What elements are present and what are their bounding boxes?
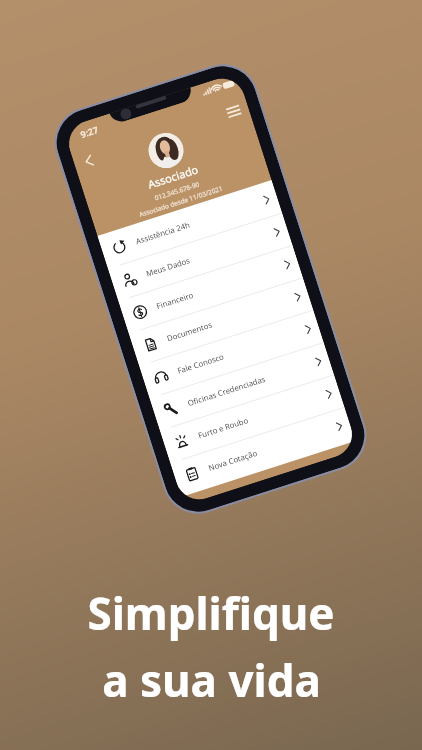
button[interactable]: Back: [74, 146, 104, 176]
button[interactable]: Assistência 24h: [97, 180, 282, 268]
staticText: Oficinas Credenciadas: [186, 374, 267, 409]
button[interactable]: Meus Dados: [108, 212, 292, 301]
staticText: 9:27: [79, 123, 99, 140]
staticText: Nova Cotação: [207, 448, 259, 474]
staticText: Associado: [146, 161, 200, 192]
staticText: 012.345.678-90: [153, 180, 201, 202]
button[interactable]: Nova Cotação: [170, 407, 355, 495]
staticText: Documentos: [166, 319, 214, 344]
staticText: Financeiro: [155, 290, 196, 312]
staticText: a sua vida: [102, 650, 321, 710]
button[interactable]: Furto e Roubo: [160, 374, 344, 463]
staticText: Associado desde 11/03/2021: [137, 184, 224, 219]
button[interactable]: Oficinas Credenciadas: [149, 342, 334, 430]
button[interactable]: Financeiro: [118, 245, 303, 333]
button[interactable]: Fale Conosco: [139, 310, 324, 398]
button[interactable]: Menu: [219, 96, 249, 126]
staticText: Fale Conosco: [176, 351, 226, 377]
staticText: Meus Dados: [145, 255, 192, 280]
staticText: Simplifique: [87, 583, 335, 643]
button[interactable]: Documentos: [129, 277, 313, 365]
staticText: Assistência 24h: [134, 219, 192, 247]
staticText: Furto e Roubo: [197, 415, 250, 441]
